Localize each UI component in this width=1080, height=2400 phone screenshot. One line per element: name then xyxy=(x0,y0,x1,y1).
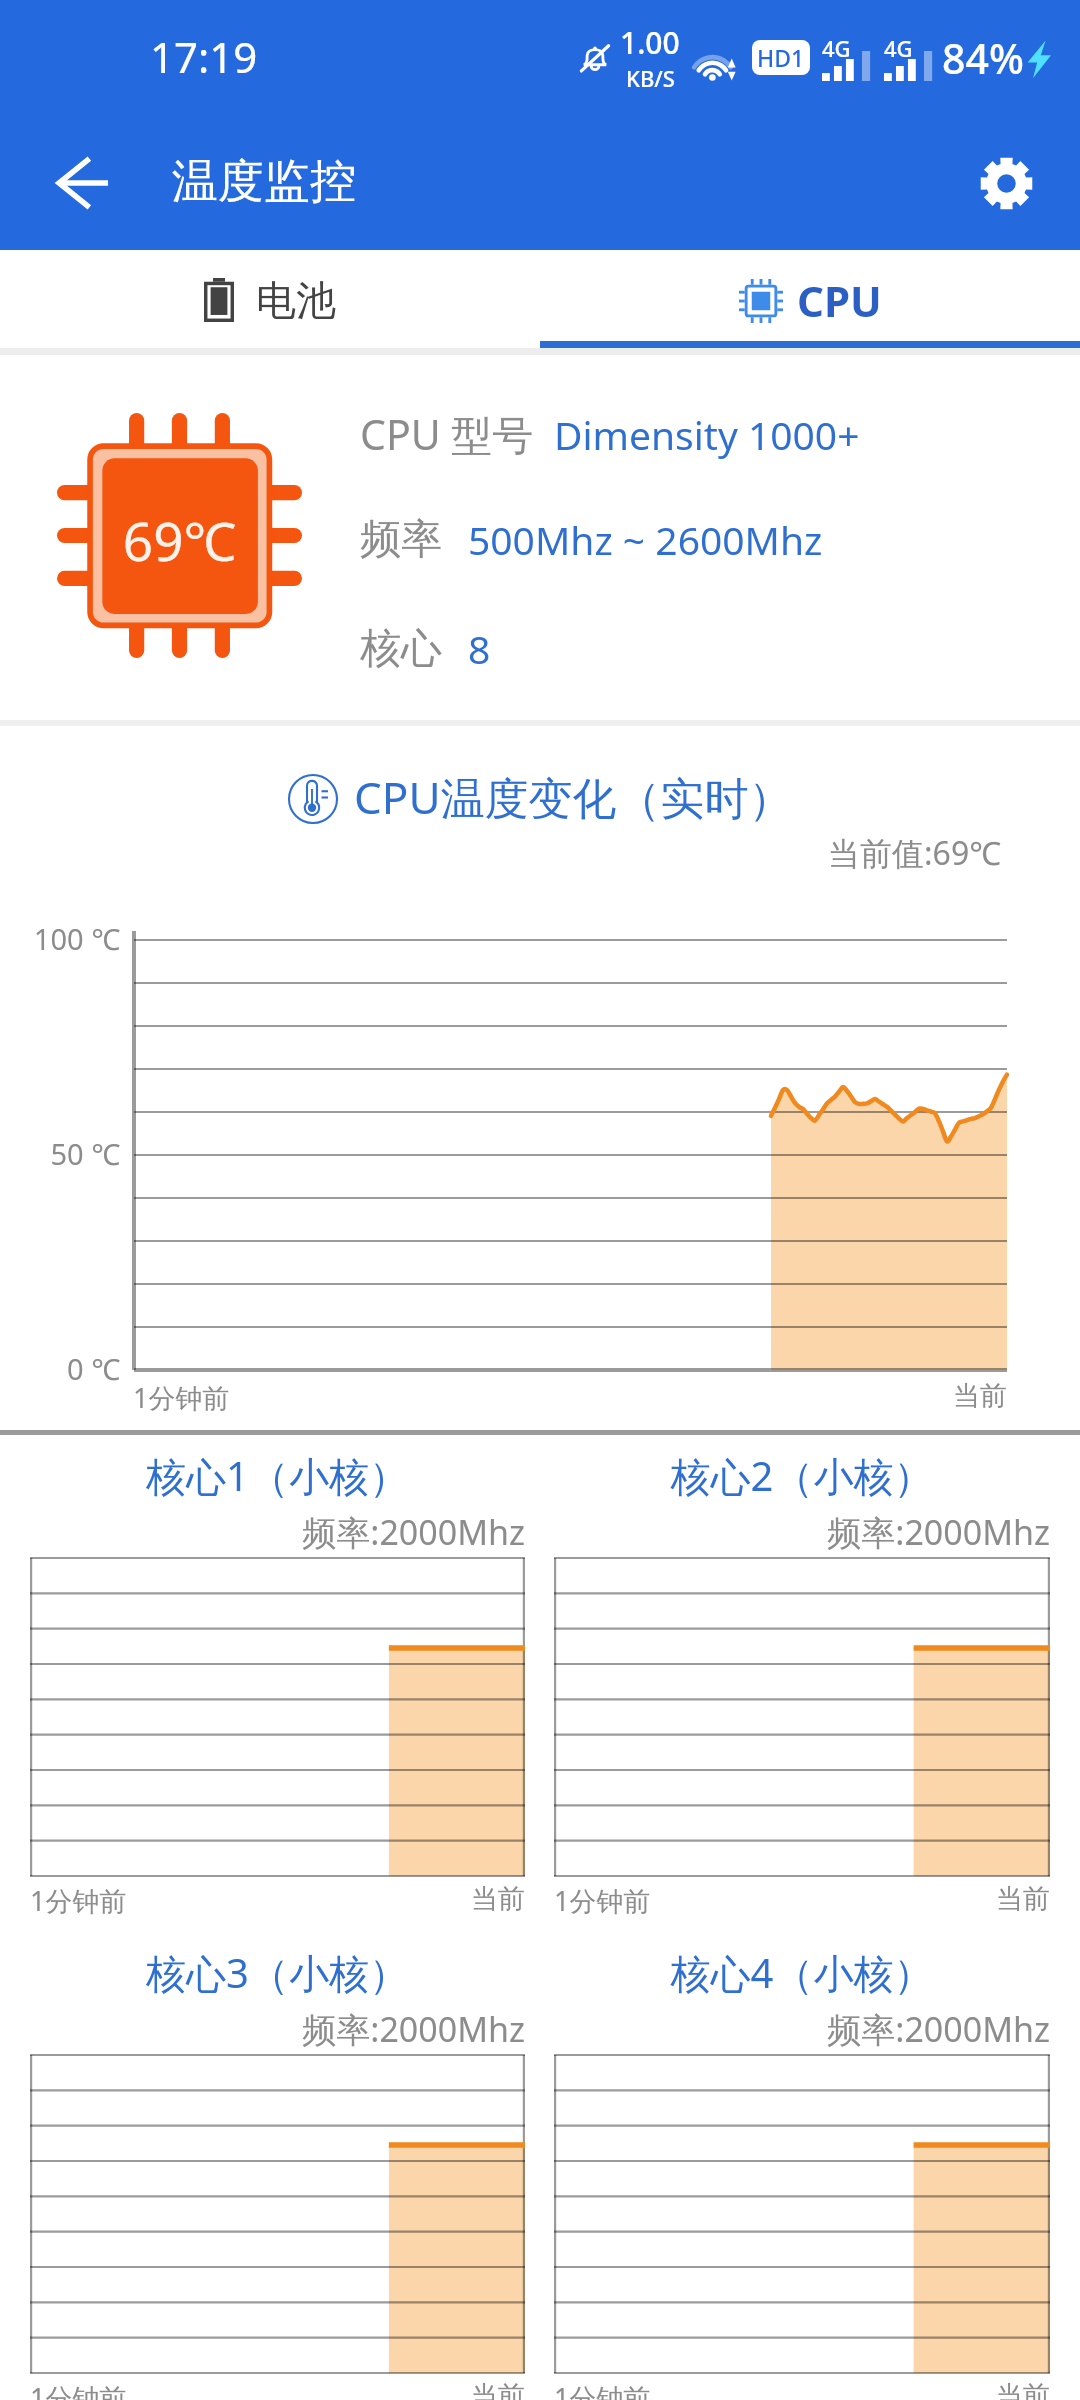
staticText: 1分钟前 xyxy=(554,2379,651,2400)
staticText: 1分钟前 xyxy=(554,1882,651,1919)
staticText: 17:19 xyxy=(150,28,258,85)
staticText: CPU xyxy=(797,272,882,329)
button[interactable]: Back xyxy=(28,129,136,237)
staticText: CPU 型号 xyxy=(360,406,534,462)
staticText: 100 ℃ xyxy=(0,919,120,958)
staticText: 核心4（小核） xyxy=(554,1945,1050,2000)
staticText: 50 ℃ xyxy=(0,1134,120,1173)
staticText: 核心 xyxy=(360,623,442,675)
staticText: 1分钟前 xyxy=(30,1882,127,1919)
staticText: 当前 xyxy=(996,1882,1050,1916)
staticText: CPU温度变化（实时） xyxy=(354,767,793,827)
staticText: 4G xyxy=(884,33,913,63)
staticText: 频率:2000Mhz xyxy=(554,1509,1050,1555)
staticText: 当前值:69℃ xyxy=(828,831,1002,875)
staticText: 1分钟前 xyxy=(30,2379,127,2400)
staticText: 频率:2000Mhz xyxy=(30,1509,525,1555)
staticText: 当前 xyxy=(471,1882,525,1916)
staticText: 69℃ xyxy=(57,504,302,576)
staticText: 核心1（小核） xyxy=(30,1448,525,1503)
staticText: 频率 xyxy=(360,514,442,566)
button[interactable]: 电池 xyxy=(0,250,540,348)
staticText: 电池 xyxy=(256,275,336,325)
staticText: 500Mhz ~ 2600Mhz xyxy=(468,513,823,566)
staticText: KB/S xyxy=(626,63,675,93)
staticText: 核心3（小核） xyxy=(30,1945,525,2000)
staticText: 核心2（小核） xyxy=(554,1448,1050,1503)
staticText: 当前 xyxy=(471,2379,525,2400)
staticText: Dimensity 1000+ xyxy=(554,408,860,461)
staticText: 0 ℃ xyxy=(0,1349,120,1388)
staticText: 84% xyxy=(942,30,1024,86)
button[interactable]: Settings xyxy=(952,129,1060,237)
staticText: 4G xyxy=(822,33,851,63)
button[interactable]: CPU xyxy=(540,250,1080,348)
staticText: 1.00 xyxy=(620,22,680,63)
staticText: 频率:2000Mhz xyxy=(30,2006,525,2052)
staticText: 当前 xyxy=(953,1379,1007,1413)
staticText: 温度监控 xyxy=(172,153,356,211)
staticText: 8 xyxy=(468,622,491,675)
staticText: 频率:2000Mhz xyxy=(554,2006,1050,2052)
staticText: HD1 xyxy=(757,42,805,73)
staticText: 当前 xyxy=(996,2379,1050,2400)
staticText: 1分钟前 xyxy=(133,1379,230,1416)
